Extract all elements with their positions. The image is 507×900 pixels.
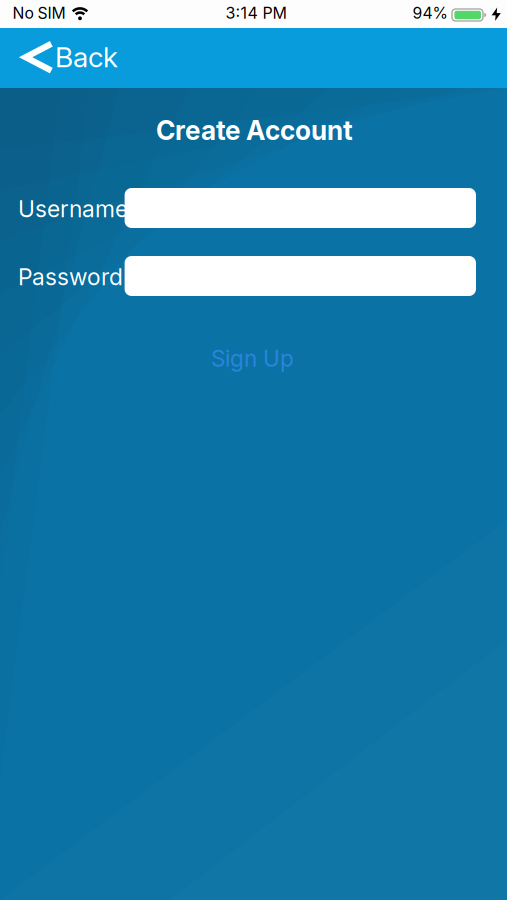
staticText: 3:14 PM xyxy=(225,3,286,23)
staticText: Back xyxy=(55,40,118,74)
button[interactable]: Back xyxy=(0,28,130,88)
staticText: 94% xyxy=(412,3,447,22)
staticText: Sign Up xyxy=(211,345,294,372)
staticText: No SIM xyxy=(12,3,65,22)
staticText: Username xyxy=(18,195,128,223)
staticText: Password xyxy=(18,263,123,291)
staticText: Create Account xyxy=(156,114,353,146)
button[interactable] xyxy=(125,256,476,296)
button[interactable]: Sign Up xyxy=(193,338,313,378)
button[interactable] xyxy=(125,188,476,228)
